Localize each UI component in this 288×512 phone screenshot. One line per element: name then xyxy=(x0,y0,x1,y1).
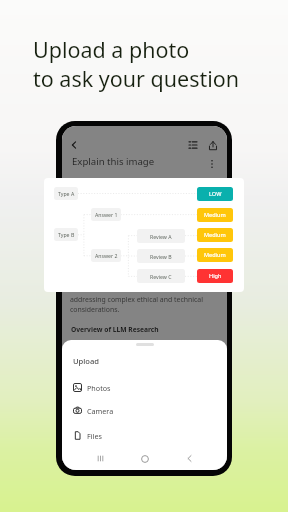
button[interactable]: Medium xyxy=(197,248,233,262)
staticText: Upload xyxy=(73,356,100,366)
staticText: Medium xyxy=(204,231,226,239)
button[interactable]: Review A xyxy=(137,229,185,243)
button[interactable]: Review B xyxy=(137,249,185,263)
button[interactable]: Back xyxy=(182,451,197,466)
button[interactable]: Back xyxy=(67,138,81,152)
staticText: Medium xyxy=(204,211,226,219)
staticText: LOW xyxy=(209,190,222,198)
staticText: Overview of LLM Research xyxy=(71,325,159,334)
staticText: to ask your question xyxy=(33,64,240,93)
staticText: Medium xyxy=(204,251,226,259)
staticText: considerations. xyxy=(70,305,120,314)
button[interactable]: Review C xyxy=(137,269,185,283)
staticText: Camera xyxy=(87,406,114,416)
button[interactable]: More options xyxy=(205,157,219,171)
staticText: Answer 1 xyxy=(95,211,118,218)
staticText: Answer 2 xyxy=(95,252,118,259)
button[interactable]: Type B xyxy=(54,228,78,241)
button[interactable]: Medium xyxy=(197,208,233,222)
staticText: High xyxy=(209,272,222,280)
button[interactable]: Medium xyxy=(197,228,233,242)
button[interactable]: Camera xyxy=(62,398,227,423)
button[interactable]: Files xyxy=(62,423,227,448)
button[interactable]: Recent apps xyxy=(93,451,108,466)
staticText: Type B xyxy=(58,231,75,238)
staticText: Type A xyxy=(58,190,75,197)
button[interactable]: LOW xyxy=(197,187,233,201)
staticText: Photos xyxy=(87,383,111,393)
staticText: Upload a photo xyxy=(33,35,190,64)
staticText: Review C xyxy=(150,273,172,280)
button[interactable]: Answer 1 xyxy=(91,208,121,221)
button[interactable]: High xyxy=(197,269,233,283)
button[interactable]: Table of contents xyxy=(186,138,200,152)
button[interactable]: Home xyxy=(137,451,152,466)
staticText: addressing complex ethical and technical xyxy=(70,295,203,304)
staticText: Review B xyxy=(150,253,172,260)
button[interactable]: Type A xyxy=(54,187,78,200)
button[interactable]: Answer 2 xyxy=(91,249,121,262)
button[interactable]: Share xyxy=(206,138,220,152)
staticText: Review A xyxy=(150,233,172,240)
staticText: Explain this image xyxy=(72,155,155,168)
staticText: Files xyxy=(87,431,102,441)
button[interactable]: Photos xyxy=(62,375,227,400)
